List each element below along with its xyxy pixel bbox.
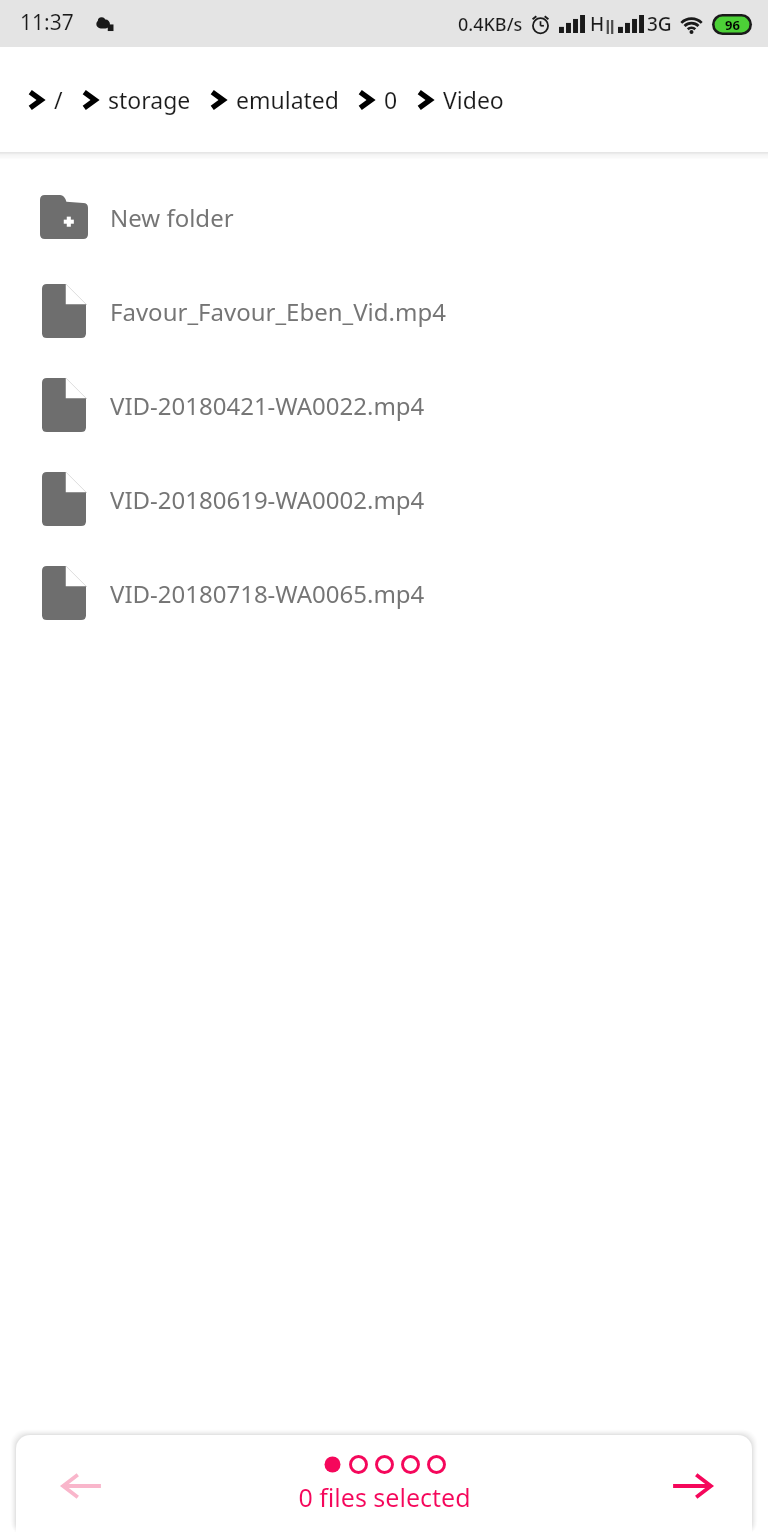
button[interactable]: 0: [352, 76, 404, 123]
button[interactable]: New folder: [0, 170, 768, 264]
button[interactable]: Previous: [54, 1458, 110, 1514]
staticText: 0 files selected: [298, 1480, 471, 1514]
staticText: 0: [384, 84, 398, 115]
staticText: 3G: [647, 11, 672, 37]
staticText: Favour_Favour_Eben_Vid.mp4: [110, 295, 446, 328]
staticText: New folder: [110, 201, 234, 234]
staticText: VID-20180619-WA0002.mp4: [110, 483, 425, 516]
staticText: VID-20180421-WA0022.mp4: [110, 389, 425, 422]
staticText: H: [590, 11, 605, 37]
staticText: emulated: [236, 84, 339, 115]
button[interactable]: Favour_Favour_Eben_Vid.mp4: [0, 264, 768, 358]
staticText: VID-20180718-WA0065.mp4: [110, 577, 425, 610]
button[interactable]: Video: [411, 76, 510, 123]
staticText: storage: [108, 84, 191, 115]
button[interactable]: Next: [664, 1458, 720, 1514]
button[interactable]: storage: [76, 76, 197, 123]
button[interactable]: VID-20180718-WA0065.mp4: [0, 546, 768, 640]
button[interactable]: /: [22, 76, 69, 123]
staticText: Video: [443, 84, 504, 115]
staticText: /: [54, 84, 63, 115]
button[interactable]: emulated: [204, 76, 345, 123]
button[interactable]: VID-20180619-WA0002.mp4: [0, 452, 768, 546]
staticText: 96: [725, 16, 740, 34]
button[interactable]: VID-20180421-WA0022.mp4: [0, 358, 768, 452]
staticText: 11:37: [20, 8, 74, 37]
staticText: 0.4KB/s: [458, 12, 523, 37]
